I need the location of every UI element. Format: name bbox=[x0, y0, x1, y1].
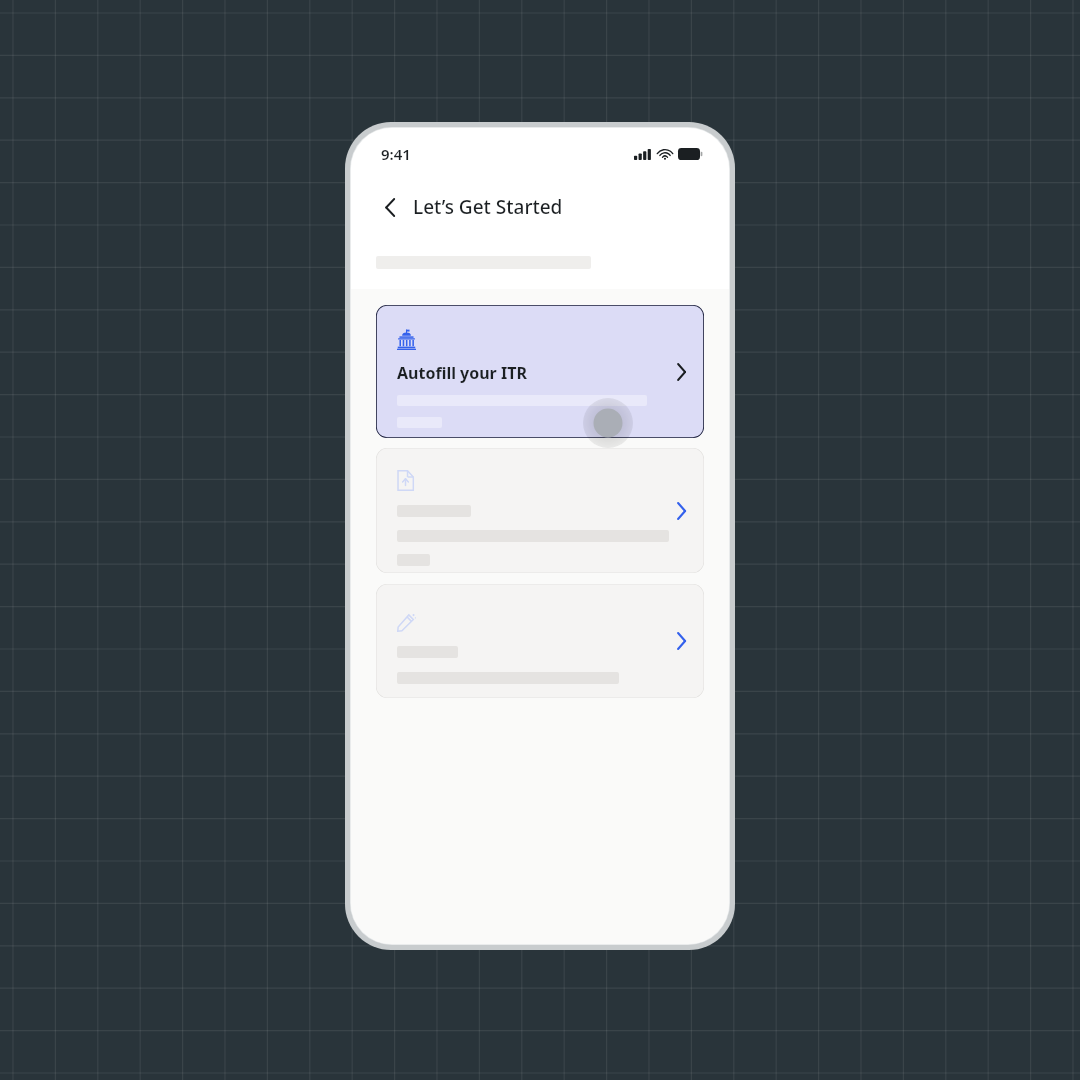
staticText: 9:41 bbox=[381, 144, 411, 164]
button[interactable]: Autofill your ITR bbox=[376, 305, 704, 438]
button[interactable]: Fill manually bbox=[376, 584, 704, 698]
button[interactable]: Back bbox=[375, 192, 405, 222]
button[interactable]: Upload document bbox=[376, 448, 704, 573]
staticText: Let’s Get Started bbox=[413, 194, 563, 220]
staticText: Autofill your ITR bbox=[397, 362, 527, 384]
